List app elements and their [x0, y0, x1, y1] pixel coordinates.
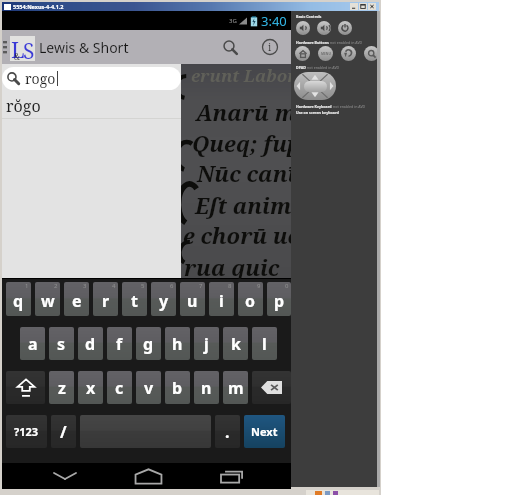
staticText: e chorū uo — [183, 220, 302, 250]
staticText: 7 — [199, 282, 203, 290]
staticText: g — [143, 333, 154, 355]
button[interactable]: Backspace — [252, 371, 291, 404]
staticText: 3 — [83, 282, 87, 290]
button[interactable]: Next — [244, 415, 285, 448]
staticText: 1 — [25, 282, 29, 290]
button[interactable]: Lewis and Short logo — [10, 36, 35, 61]
staticText: not enabled in AVD — [307, 65, 340, 70]
staticText: i — [268, 40, 272, 54]
button[interactable]: Minimize — [350, 3, 358, 10]
button[interactable]: c — [107, 371, 132, 404]
staticText: f — [116, 333, 123, 355]
staticText: s — [57, 333, 66, 355]
button[interactable]: rogo — [2, 67, 181, 90]
staticText: 2 — [54, 282, 58, 290]
button[interactable]: m — [223, 371, 248, 404]
button[interactable]: x — [78, 371, 103, 404]
button[interactable]: Maximize — [359, 3, 367, 10]
staticText: rŏgo — [6, 95, 41, 117]
button[interactable]: 1 — [6, 282, 31, 316]
button[interactable]: 6 — [151, 282, 176, 316]
button[interactable]: Home — [295, 46, 310, 61]
staticText: Hardware Buttons — [296, 40, 330, 45]
staticText: h — [172, 333, 183, 355]
staticText: p — [274, 290, 285, 312]
button[interactable]: ?123 — [6, 415, 47, 448]
staticText: 4 — [112, 282, 116, 290]
staticText: rua quic — [184, 252, 280, 282]
button[interactable]: Volume up — [317, 21, 331, 35]
button[interactable]: n — [194, 371, 219, 404]
button[interactable]: g — [136, 327, 161, 360]
button[interactable]: Volume down — [296, 21, 310, 35]
button[interactable]: . — [215, 415, 240, 448]
button[interactable]: Home — [126, 463, 171, 489]
staticText: n — [201, 377, 212, 399]
staticText: b — [172, 377, 183, 399]
staticText: Nūc canī — [197, 158, 296, 188]
staticText: c — [115, 377, 124, 399]
staticText: Lewis & Short — [39, 38, 129, 57]
button[interactable]: 8 — [209, 282, 234, 316]
button[interactable]: 9 — [238, 282, 263, 316]
staticText: S — [23, 37, 35, 62]
staticText: y — [159, 290, 169, 312]
staticText: Queq; fup — [192, 128, 301, 158]
button[interactable]: j — [194, 327, 219, 360]
staticText: t — [131, 290, 138, 312]
button[interactable]: 7 — [180, 282, 205, 316]
staticText: 8 — [228, 282, 232, 290]
button[interactable]: 0 — [267, 282, 291, 316]
button[interactable]: f — [107, 327, 132, 360]
button[interactable]: k — [223, 327, 248, 360]
staticText: Use on screen keyboard — [296, 110, 339, 115]
staticText: 3G — [229, 17, 237, 25]
staticText: e — [72, 290, 82, 312]
staticText: x — [86, 377, 96, 399]
button[interactable]: / — [51, 415, 76, 448]
button[interactable]: l — [252, 327, 277, 360]
button[interactable]: s — [49, 327, 74, 360]
button[interactable]: Power — [338, 21, 352, 35]
staticText: d — [85, 333, 96, 355]
staticText: 3:40 — [261, 12, 287, 30]
button[interactable]: Recent apps — [209, 463, 254, 489]
button[interactable]: Space — [80, 415, 211, 448]
staticText: / — [60, 421, 67, 443]
button[interactable]: 3 — [64, 282, 89, 316]
staticText: Basic Controls — [296, 14, 322, 19]
staticText: z — [58, 377, 66, 399]
staticText: u — [187, 290, 198, 312]
staticText: 5554:Nexus-4-4.1.2 — [13, 3, 64, 10]
button[interactable]: Search — [211, 30, 249, 64]
button[interactable]: 2 — [35, 282, 60, 316]
button[interactable]: Menu — [318, 46, 333, 61]
button[interactable]: Back — [341, 46, 356, 61]
button[interactable]: b — [165, 371, 190, 404]
button[interactable]: Shift — [6, 371, 45, 404]
button[interactable]: 4 — [93, 282, 118, 316]
staticText: DPAD — [296, 65, 307, 70]
button[interactable]: Info — [249, 30, 291, 64]
button[interactable]: rŏgo — [2, 93, 181, 118]
staticText: j — [204, 333, 209, 355]
button[interactable]: d — [78, 327, 103, 360]
button[interactable]: v — [136, 371, 161, 404]
staticText: . — [225, 421, 230, 443]
button[interactable]: D-pad — [294, 72, 336, 100]
button[interactable]: Back — [42, 463, 87, 489]
button[interactable]: a — [20, 327, 45, 360]
staticText: 9 — [257, 282, 261, 290]
staticText: rogo — [25, 69, 56, 88]
staticText: o — [245, 290, 256, 312]
button[interactable]: 5 — [122, 282, 147, 316]
button[interactable]: Search — [364, 46, 379, 61]
button[interactable]: Close — [368, 3, 376, 10]
staticText: 6 — [170, 282, 174, 290]
button[interactable]: h — [165, 327, 190, 360]
staticText: i — [219, 290, 224, 312]
staticText: 0 — [285, 282, 289, 290]
staticText: MENU — [321, 52, 331, 56]
staticText: l — [262, 333, 267, 355]
button[interactable]: z — [49, 371, 74, 404]
